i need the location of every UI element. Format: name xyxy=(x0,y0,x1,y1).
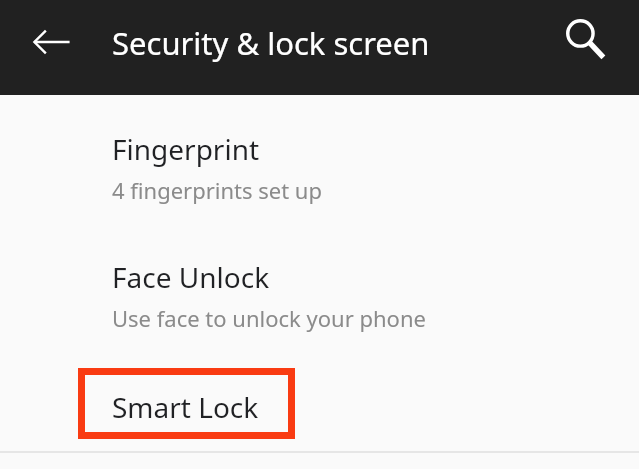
button[interactable]: Smart Lock xyxy=(0,366,639,446)
staticText: Fingerprint xyxy=(112,130,260,168)
staticText: Smart Lock xyxy=(112,388,259,426)
button[interactable]: Fingerprint xyxy=(0,110,639,220)
staticText: Security & lock screen xyxy=(112,22,430,64)
button[interactable]: Search xyxy=(555,9,615,69)
staticText: Face Unlock xyxy=(112,258,270,296)
button[interactable]: Face Unlock xyxy=(0,238,639,348)
staticText: 4 fingerprints set up xyxy=(112,175,322,205)
button[interactable]: Back xyxy=(22,12,82,72)
staticText: Use face to unlock your phone xyxy=(112,303,426,333)
